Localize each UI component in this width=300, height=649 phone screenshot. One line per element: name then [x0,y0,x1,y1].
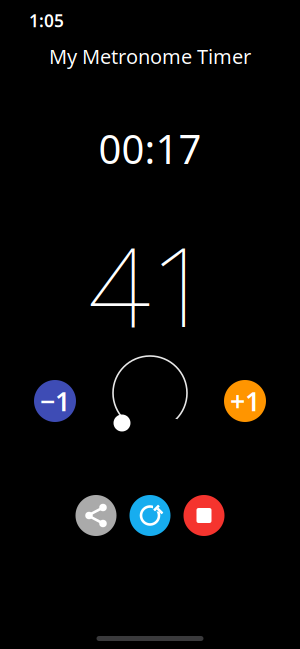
staticText: 1:05 [29,9,64,32]
button[interactable]: Stop [183,495,224,536]
staticText: +1 [230,383,260,419]
button[interactable]: −1 [34,380,76,422]
staticText: 41 [88,212,212,357]
staticText: My Metronome Timer [49,43,251,70]
staticText: −1 [40,383,70,419]
button[interactable]: Reset [129,495,170,536]
button[interactable]: Share [75,495,116,536]
button[interactable]: +1 [224,380,266,422]
staticText: 00:17 [98,122,201,175]
